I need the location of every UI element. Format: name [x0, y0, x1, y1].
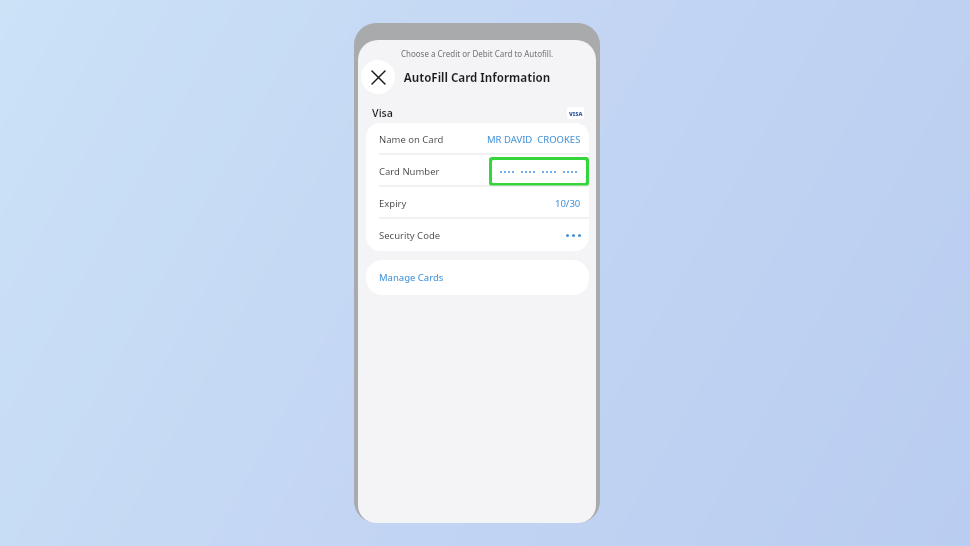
staticText: Name on Card [379, 133, 444, 146]
staticText: Expiry [379, 197, 407, 210]
staticText: 10/30 [555, 197, 581, 210]
button[interactable]: Close [361, 60, 395, 94]
staticText: Choose a Credit or Debit Card to Autofil… [358, 48, 596, 59]
staticText: Visa [372, 106, 393, 120]
staticText: Card Number [379, 165, 440, 178]
button[interactable]: Security Code [366, 219, 589, 251]
staticText: Security Code [379, 229, 441, 242]
staticText: Manage Cards [379, 271, 444, 284]
button[interactable]: Expiry [366, 187, 589, 219]
button[interactable]: Card Number [366, 155, 589, 187]
staticText: MR DAVID CROOKES [487, 133, 581, 146]
button[interactable]: Manage Cards [366, 260, 589, 295]
staticText: AutoFill Card Information [358, 70, 596, 86]
staticText: VISA [569, 110, 583, 117]
button[interactable]: Name on Card [366, 123, 589, 155]
